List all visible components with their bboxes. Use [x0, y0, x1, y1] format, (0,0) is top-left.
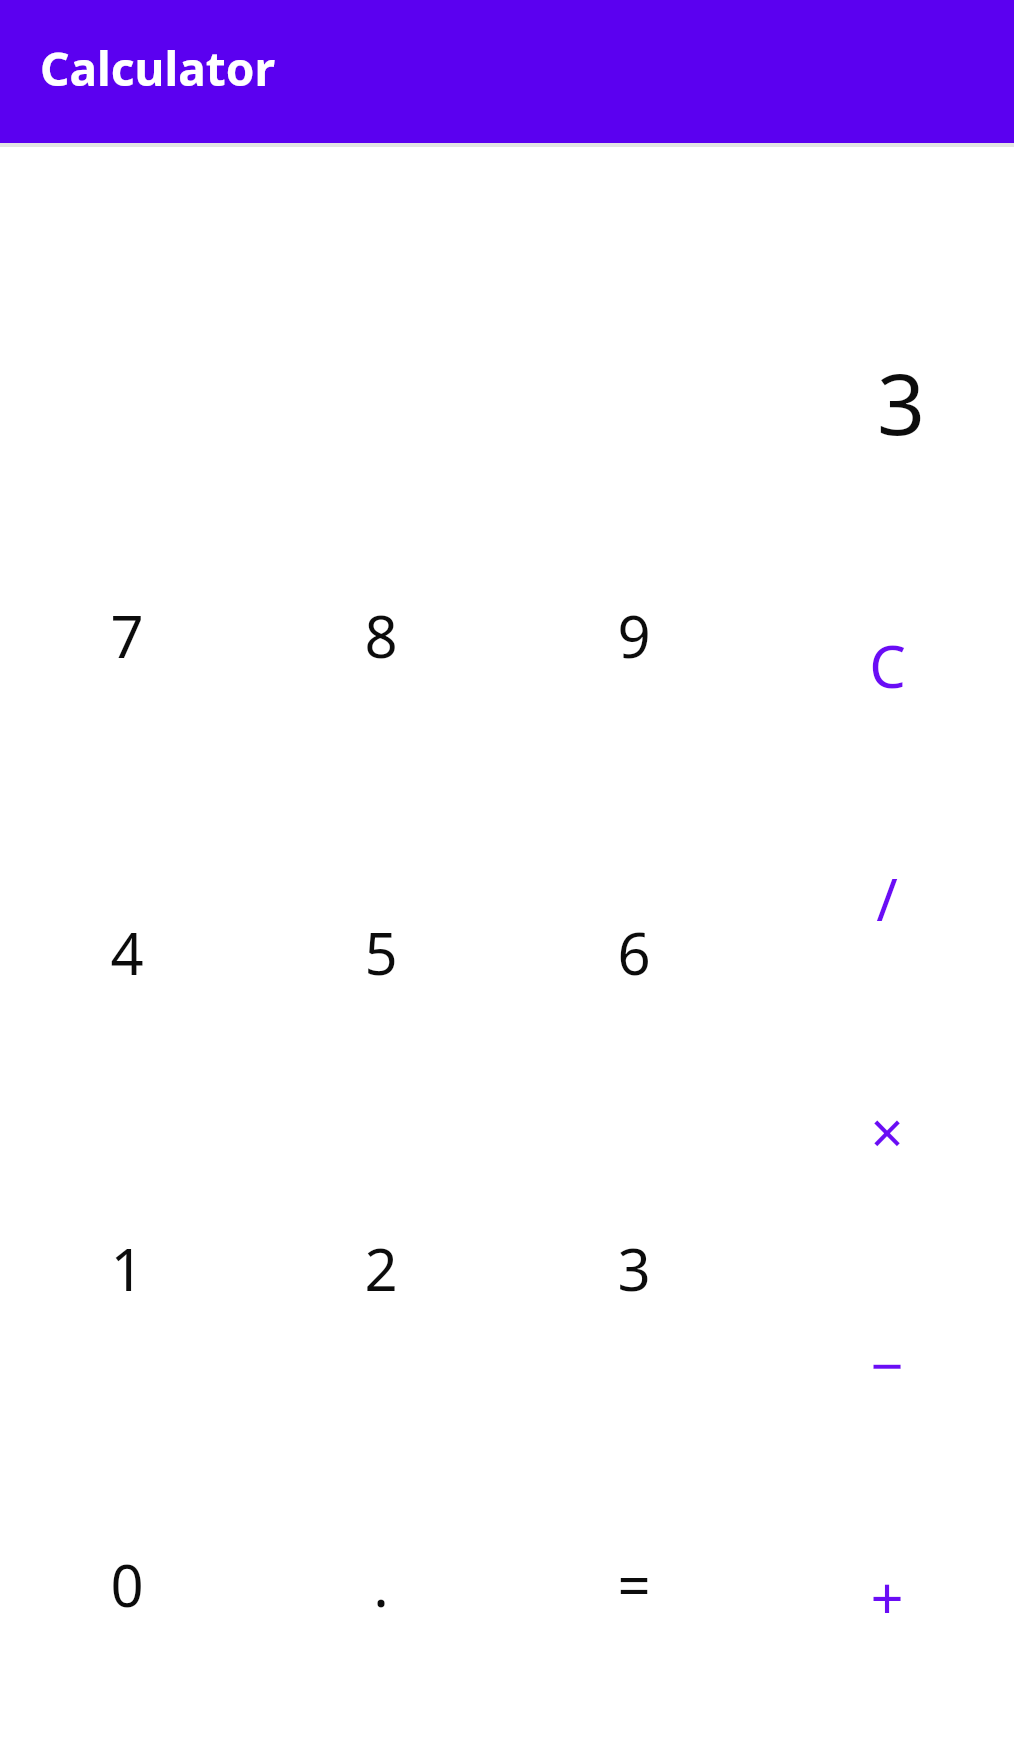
- button[interactable]: Divide: [760, 782, 1014, 1015]
- staticText: 6: [617, 913, 651, 992]
- button[interactable]: 3: [507, 1110, 760, 1426]
- button[interactable]: =: [507, 1426, 760, 1742]
- staticText: 4: [110, 913, 144, 992]
- staticText: 1: [110, 1229, 144, 1308]
- staticText: 7: [110, 596, 144, 675]
- staticText: ×: [870, 1092, 904, 1171]
- staticText: 0: [110, 1545, 144, 1624]
- button[interactable]: Multiply: [760, 1015, 1014, 1248]
- button[interactable]: Subtract: [760, 1248, 1014, 1481]
- button[interactable]: 2: [254, 1110, 507, 1426]
- staticText: 3: [617, 1229, 651, 1308]
- staticText: /: [876, 859, 898, 938]
- staticText: −: [870, 1325, 904, 1404]
- button[interactable]: 7: [0, 477, 254, 794]
- button[interactable]: 5: [254, 794, 507, 1110]
- button[interactable]: Clear: [760, 548, 1014, 782]
- button[interactable]: 0: [0, 1426, 254, 1742]
- staticText: 8: [364, 596, 398, 675]
- button[interactable]: .: [254, 1426, 507, 1742]
- button[interactable]: 9: [507, 477, 760, 794]
- staticText: .: [373, 1545, 389, 1624]
- button[interactable]: 1: [0, 1110, 254, 1426]
- staticText: =: [617, 1545, 651, 1624]
- staticText: Calculator: [40, 37, 275, 100]
- button[interactable]: 6: [507, 794, 760, 1110]
- staticText: +: [870, 1558, 904, 1637]
- button[interactable]: Add: [760, 1481, 1014, 1714]
- staticText: 2: [364, 1229, 398, 1308]
- staticText: 9: [617, 596, 651, 675]
- button[interactable]: 4: [0, 794, 254, 1110]
- button[interactable]: 8: [254, 477, 507, 794]
- staticText: C: [869, 626, 906, 705]
- staticText: 3: [877, 345, 926, 459]
- staticText: 5: [364, 913, 398, 992]
